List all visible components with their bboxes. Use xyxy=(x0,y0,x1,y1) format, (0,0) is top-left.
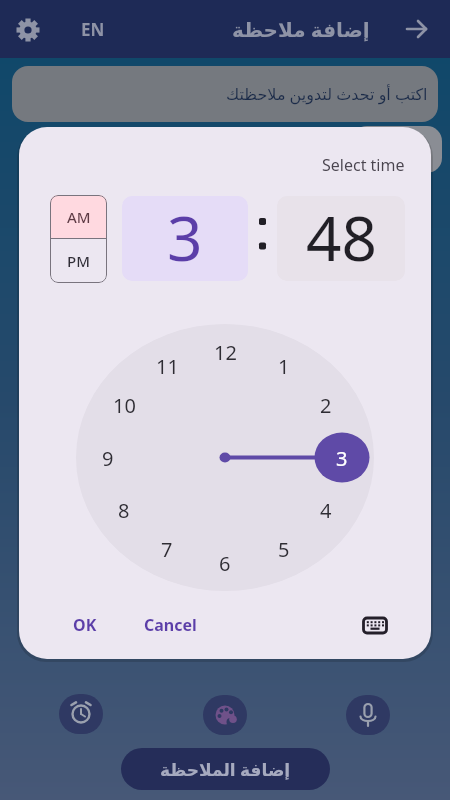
staticText: 7 xyxy=(161,536,173,563)
button[interactable]: 3 xyxy=(326,442,358,474)
button[interactable]: 12 xyxy=(209,336,241,368)
button[interactable] xyxy=(401,13,433,45)
button[interactable]: 5 xyxy=(268,533,300,565)
staticText: اكتب أو تحدث لتدوين ملاحظتك xyxy=(226,83,428,105)
staticText: AM xyxy=(67,207,91,227)
button[interactable] xyxy=(14,16,42,44)
staticText: 1 xyxy=(278,353,290,380)
button[interactable]: 9 xyxy=(92,442,124,474)
button[interactable]: إضافة الملاحظة xyxy=(121,748,330,790)
staticText: Cancel xyxy=(144,614,197,636)
staticText: 3 xyxy=(336,445,348,472)
button[interactable] xyxy=(346,695,390,735)
staticText: 12 xyxy=(214,339,237,366)
button[interactable] xyxy=(203,695,247,735)
button[interactable]: 7 xyxy=(151,533,183,565)
button[interactable]: 11 xyxy=(151,350,183,382)
staticText: إضافة الملاحظة xyxy=(160,758,291,781)
button[interactable]: 2 xyxy=(310,389,342,421)
staticText: OK xyxy=(73,614,97,636)
staticText: 48 xyxy=(306,196,377,279)
button[interactable]: 10 xyxy=(108,389,140,421)
button[interactable]: Cancel xyxy=(137,609,203,641)
staticText: 9 xyxy=(102,445,114,472)
button[interactable]: 4 xyxy=(310,494,342,526)
button[interactable]: 1 xyxy=(268,350,300,382)
button[interactable] xyxy=(357,611,395,637)
button[interactable]: اكتب أو تحدث لتدوين ملاحظتك xyxy=(12,66,438,122)
staticText: EN xyxy=(81,18,105,41)
button[interactable]: OK xyxy=(65,609,105,641)
staticText: 4 xyxy=(320,497,332,524)
staticText: 10 xyxy=(113,392,136,419)
button[interactable]: 8 xyxy=(108,494,140,526)
staticText: إضافة ملاحظة xyxy=(232,16,370,43)
staticText: 3 xyxy=(167,196,203,279)
button[interactable]: 6 xyxy=(209,547,241,579)
staticText: 5 xyxy=(278,536,290,563)
button[interactable] xyxy=(59,694,103,734)
button[interactable]: EN xyxy=(70,14,116,44)
button[interactable]: 48 xyxy=(277,196,405,281)
staticText: PM xyxy=(67,251,90,271)
button[interactable]: 3 xyxy=(122,196,248,281)
staticText: 6 xyxy=(219,550,231,577)
button[interactable]: AM xyxy=(50,195,107,238)
button[interactable]: PM xyxy=(50,239,107,283)
staticText: Select time xyxy=(322,154,405,176)
staticText: 8 xyxy=(118,497,130,524)
staticText: 11 xyxy=(156,353,179,380)
staticText: 2 xyxy=(320,392,332,419)
